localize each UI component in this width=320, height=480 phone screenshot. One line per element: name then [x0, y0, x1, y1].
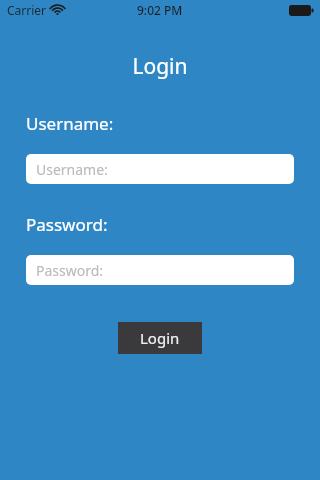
button[interactable]: Username:: [26, 154, 294, 184]
staticText: Carrier: [7, 2, 47, 18]
staticText: Username:: [26, 112, 114, 135]
button[interactable]: Password:: [26, 255, 294, 285]
staticText: Login: [0, 52, 320, 81]
staticText: Login: [140, 328, 180, 348]
staticText: Password:: [26, 213, 108, 236]
staticText: Password:: [36, 261, 104, 280]
button[interactable]: Login: [118, 322, 202, 354]
staticText: 9:02 PM: [137, 2, 183, 18]
staticText: Username:: [36, 160, 108, 179]
